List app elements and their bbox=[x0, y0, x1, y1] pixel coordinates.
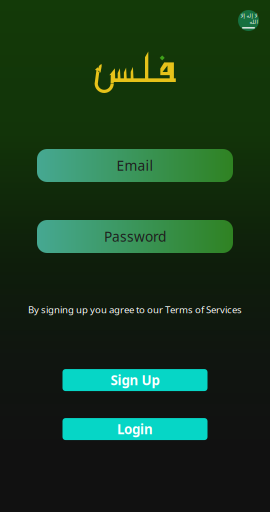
staticText: Email bbox=[116, 156, 153, 175]
staticText: By signing up you agree to our Terms of … bbox=[28, 303, 242, 316]
staticText: لا إله إلا الله bbox=[240, 12, 257, 25]
staticText: Login bbox=[117, 420, 153, 438]
button[interactable]: Password bbox=[37, 220, 233, 253]
staticText: Sign Up bbox=[110, 371, 159, 389]
button[interactable]: Email bbox=[37, 149, 233, 182]
button[interactable]: Sign Up bbox=[62, 369, 207, 391]
staticText: Password bbox=[104, 227, 166, 246]
button[interactable]: Language bbox=[238, 10, 259, 31]
button[interactable]: Login bbox=[62, 418, 207, 440]
